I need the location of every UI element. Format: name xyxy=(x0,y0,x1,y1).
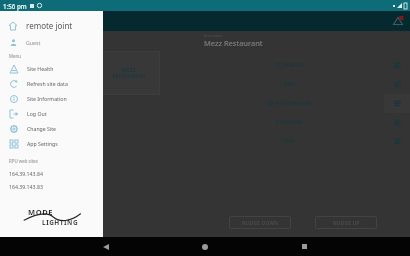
staticText: MELL xyxy=(0,114,13,120)
button[interactable]: MEZZ BAR xyxy=(38,51,98,95)
staticText: AFTERNOON xyxy=(276,100,312,107)
button[interactable]: Change Site xyxy=(10,121,103,136)
button[interactable]: TEST xyxy=(38,95,98,139)
staticText: MODE xyxy=(28,207,54,217)
button[interactable]: 164.39.143.83 xyxy=(9,183,103,196)
staticText: Refresh site data xyxy=(27,80,68,87)
staticText: 164.39.143.83 xyxy=(9,183,43,190)
staticText: OUTLETS xyxy=(0,70,18,76)
staticText: Change Site xyxy=(27,125,57,132)
button[interactable]: Home xyxy=(193,237,217,256)
button[interactable]: 164.39.143.84 xyxy=(9,170,103,183)
staticText: 1:56 pm xyxy=(3,2,27,10)
staticText: MEZZ RESTAURANT xyxy=(112,67,146,79)
staticText: NUDGE UP xyxy=(333,220,360,226)
staticText: Site Information xyxy=(27,95,67,102)
button[interactable]: AFTERNOON xyxy=(196,94,410,113)
button[interactable]: Refresh site data xyxy=(10,76,103,91)
button[interactable]: Adjust AFTERNOON xyxy=(384,94,410,113)
staticText: Guest xyxy=(26,39,41,46)
button[interactable]: Recents xyxy=(292,237,316,256)
button[interactable]: Log Out xyxy=(10,106,103,121)
staticText: Mezz Restaurant xyxy=(204,38,263,48)
staticText: 164.39.143.84 xyxy=(9,170,43,177)
staticText: remote joint xyxy=(26,20,73,31)
button[interactable]: Adjust CLEANING xyxy=(384,56,410,75)
button[interactable]: Adjust DAY xyxy=(384,75,410,94)
staticText: Menu xyxy=(9,53,21,59)
button[interactable]: Guest xyxy=(10,34,103,50)
button[interactable]: Adjust EVENING xyxy=(384,113,410,132)
button[interactable]: Flag xyxy=(90,34,104,48)
button[interactable]: App Settings xyxy=(10,136,103,151)
button[interactable]: MELL xyxy=(0,95,38,139)
button[interactable]: NUDGE DOWN xyxy=(229,216,291,229)
staticText: RPU web sites xyxy=(9,158,38,164)
button[interactable]: Back xyxy=(94,237,118,256)
button[interactable]: Site Health xyxy=(10,61,103,76)
staticText: App Settings xyxy=(27,140,58,147)
button[interactable]: OUTLETS xyxy=(0,51,38,95)
staticText: Site Health xyxy=(27,65,54,72)
staticText: CLEANING xyxy=(275,62,305,69)
staticText: Log Out xyxy=(27,110,47,117)
staticText: EVENING xyxy=(276,119,303,126)
button[interactable]: remote joint xyxy=(9,17,103,34)
staticText: Area name xyxy=(204,33,223,38)
button[interactable]: NUDGE UP xyxy=(315,216,377,229)
staticText: OFF xyxy=(284,138,295,145)
button[interactable]: Site Information xyxy=(10,91,103,106)
button[interactable]: Adjust OFF xyxy=(384,132,410,151)
button[interactable]: Alerts xyxy=(391,14,405,28)
staticText: DAY xyxy=(284,81,296,88)
staticText: LIGHTING xyxy=(42,218,79,227)
staticText: NUDGE DOWN xyxy=(242,220,279,226)
button[interactable]: MEZZ RESTAURANT xyxy=(98,51,160,95)
